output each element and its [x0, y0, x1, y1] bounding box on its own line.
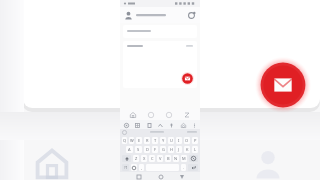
button[interactable]: D — [144, 146, 150, 153]
button[interactable]: Profile — [252, 148, 284, 180]
staticText: O — [185, 138, 189, 143]
button[interactable]: . — [181, 164, 186, 171]
button[interactable]: Home — [157, 173, 164, 180]
button[interactable]: L — [192, 146, 198, 153]
staticText: G — [162, 147, 165, 152]
button[interactable]: Tool 0 — [128, 110, 138, 120]
button[interactable]: Tool 1 — [146, 110, 156, 120]
button[interactable]: Switch account — [186, 10, 196, 20]
staticText: , — [141, 165, 143, 170]
button[interactable]: Keyboard tool 0 — [122, 121, 130, 129]
button[interactable]: Keyboard tool 4 — [167, 121, 175, 129]
button[interactable]: T — [152, 137, 158, 144]
staticText: C — [151, 156, 154, 161]
staticText: P — [194, 138, 197, 143]
button[interactable]: Compose message — [255, 57, 311, 113]
button[interactable]: C — [149, 155, 155, 162]
button[interactable]: K — [184, 146, 190, 153]
button[interactable]: Keyboard tool 6 — [190, 121, 198, 129]
button[interactable]: Voice input — [122, 130, 127, 135]
staticText: N — [174, 156, 178, 161]
staticText: B — [167, 156, 170, 161]
button[interactable]: Enter — [188, 164, 198, 171]
button[interactable]: Shift — [122, 155, 131, 162]
button[interactable]: W — [129, 137, 134, 144]
button[interactable]: I — [176, 137, 182, 144]
button[interactable]: Y — [160, 137, 166, 144]
button[interactable]: , — [139, 164, 144, 171]
button[interactable]: P — [192, 137, 198, 144]
button[interactable]: G — [160, 146, 166, 153]
staticText: Q — [123, 138, 127, 143]
staticText: Z — [135, 156, 138, 161]
staticText: T — [154, 138, 157, 143]
button[interactable]: Recents — [135, 173, 142, 180]
button[interactable]: Numbers — [122, 164, 129, 171]
staticText: I — [178, 138, 180, 143]
staticText: J — [178, 147, 180, 152]
button[interactable]: O — [184, 137, 190, 144]
button[interactable]: X — [141, 155, 147, 162]
button[interactable]: E — [136, 137, 142, 144]
staticText: M — [182, 156, 186, 161]
button[interactable]: V — [157, 155, 163, 162]
staticText: D — [146, 147, 149, 152]
staticText: S — [137, 147, 140, 152]
staticText: A — [128, 147, 131, 152]
button[interactable] — [123, 25, 197, 38]
button[interactable]: S — [135, 146, 142, 153]
button[interactable]: A — [126, 146, 133, 153]
button[interactable]: Backspace — [189, 155, 198, 162]
button[interactable]: H — [168, 146, 174, 153]
staticText: F — [154, 147, 157, 152]
button[interactable]: R — [144, 137, 150, 144]
staticText: Y — [162, 138, 165, 143]
button[interactable]: Keyboard tool 2 — [145, 121, 153, 129]
button[interactable]: J — [176, 146, 182, 153]
staticText: L — [194, 147, 197, 152]
staticText: R — [146, 138, 149, 143]
button[interactable]: N — [173, 155, 179, 162]
staticText: E — [138, 138, 141, 143]
staticText: W — [130, 138, 134, 143]
button[interactable]: Back — [178, 173, 185, 180]
button[interactable]: B — [165, 155, 171, 162]
button[interactable]: Tool 3 — [182, 110, 192, 120]
button[interactable]: Send message — [181, 72, 194, 85]
staticText: H — [170, 147, 173, 152]
staticText: X — [143, 156, 146, 161]
staticText: V — [159, 156, 162, 161]
staticText: ?1 — [124, 165, 128, 170]
staticText: . — [183, 165, 185, 170]
button[interactable]: Switch account — [124, 7, 196, 23]
button[interactable]: Keyboard tool 3 — [156, 121, 164, 129]
button[interactable]: Keyboard tool 5 — [179, 121, 187, 129]
button[interactable]: F — [152, 146, 158, 153]
button[interactable]: Emoji — [131, 164, 137, 171]
button[interactable]: U — [168, 137, 174, 144]
button[interactable]: Q — [122, 137, 127, 144]
button[interactable]: Z — [133, 155, 139, 162]
staticText: K — [186, 147, 189, 152]
staticText: U — [170, 138, 173, 143]
button[interactable]: Tool 2 — [164, 110, 174, 120]
button[interactable]: Keyboard tool 1 — [133, 121, 141, 129]
button[interactable]: M — [181, 155, 187, 162]
button[interactable]: Home — [36, 148, 68, 180]
